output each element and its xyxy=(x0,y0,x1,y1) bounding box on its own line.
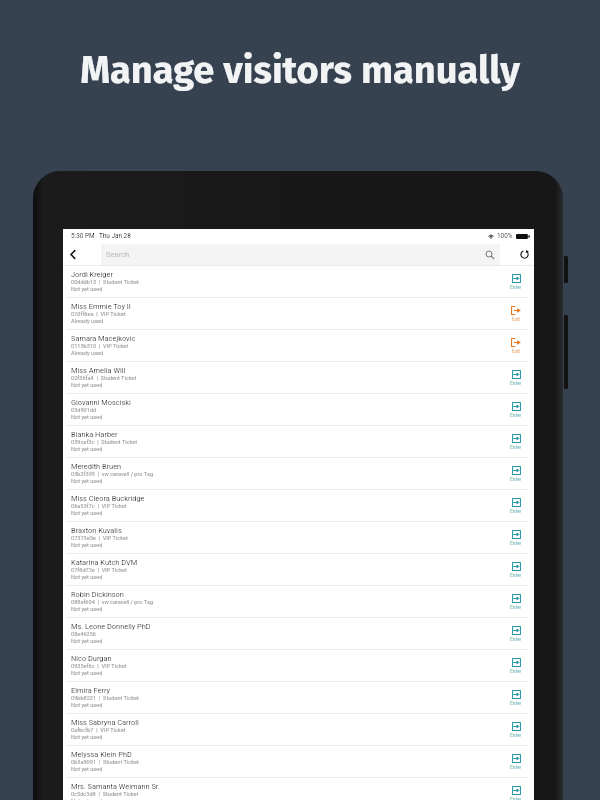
button[interactable]: Search xyxy=(101,244,500,265)
staticText: Enter xyxy=(510,573,522,579)
button[interactable]: Robin Dickinson xyxy=(63,586,534,617)
staticText: Not yet used xyxy=(71,286,103,293)
staticText: Enter xyxy=(510,285,522,291)
staticText: Enter xyxy=(510,797,522,800)
button[interactable]: Exit xyxy=(498,298,534,329)
button[interactable]: Mrs. Samanta Weimann Sr. xyxy=(63,778,534,800)
staticText: 08e46256 xyxy=(71,631,96,638)
staticText: Not yet used xyxy=(71,798,103,800)
staticText: Not yet used xyxy=(71,670,103,677)
staticText: 010ff6ea | VIP Ticket xyxy=(71,311,126,318)
staticText: Ms. Leone Donnelly PhD xyxy=(71,622,151,631)
button[interactable]: Enter xyxy=(498,490,534,521)
staticText: Enter xyxy=(510,541,522,547)
staticText: Jordi Kreiger xyxy=(71,270,113,279)
staticText: 07f8d72e | VIP Ticket xyxy=(71,567,127,574)
button[interactable]: Enter xyxy=(498,426,534,457)
staticText: 06a53f7c | VIP Ticket xyxy=(71,503,127,510)
button[interactable]: Ms. Leone Donnelly PhD xyxy=(63,618,534,649)
button[interactable]: Enter xyxy=(498,746,534,777)
button[interactable]: Exit xyxy=(498,330,534,361)
staticText: Enter xyxy=(510,381,522,387)
button[interactable]: Giovanni Mosciski xyxy=(63,394,534,425)
button[interactable]: Enter xyxy=(498,778,534,800)
staticText: Not yet used xyxy=(71,574,103,581)
button[interactable]: Enter xyxy=(498,522,534,553)
staticText: Not yet used xyxy=(71,542,103,549)
staticText: 100% xyxy=(497,232,513,240)
staticText: Robin Dickinson xyxy=(71,590,124,599)
staticText: 00dddb13 | Student Ticket xyxy=(71,279,139,286)
staticText: Enter xyxy=(510,509,522,515)
button[interactable]: Katarina Kutch DVM xyxy=(63,554,534,585)
staticText: Enter xyxy=(510,765,522,771)
staticText: Enter xyxy=(510,701,522,707)
staticText: 0935ef6c | VIP Ticket xyxy=(71,663,127,670)
staticText: Meredith Bruen xyxy=(71,462,122,471)
staticText: Not yet used xyxy=(71,478,103,485)
staticText: 0afbcfb7 | VIP Ticket xyxy=(71,727,126,734)
staticText: 059caf3c | Student Ticket xyxy=(71,439,138,446)
staticText: 0115b310 | VIP Ticket xyxy=(71,343,129,350)
button[interactable]: Samara Macejkovic xyxy=(63,330,534,361)
staticText: Not yet used xyxy=(71,446,103,453)
staticText: Braxton Kuvalis xyxy=(71,526,122,535)
staticText: Mrs. Samanta Weimann Sr. xyxy=(71,782,160,791)
staticText: Manage visitors manually xyxy=(0,47,600,93)
button[interactable]: Refresh xyxy=(514,243,534,266)
staticText: 03d901dd xyxy=(71,407,97,414)
staticText: Search xyxy=(106,250,130,259)
button[interactable]: Jordi Kreiger xyxy=(63,266,534,297)
button[interactable]: Back xyxy=(63,243,82,266)
staticText: Not yet used xyxy=(71,606,103,613)
staticText: Not yet used xyxy=(71,510,103,517)
button[interactable]: Enter xyxy=(498,586,534,617)
staticText: 07373e5e | VIP Ticket xyxy=(71,535,128,542)
staticText: Already used xyxy=(71,318,104,325)
button[interactable]: Nico Durgan xyxy=(63,650,534,681)
staticText: Miss Sabryna Carroll xyxy=(71,718,139,727)
staticText: Enter xyxy=(510,637,522,643)
button[interactable]: Enter xyxy=(498,714,534,745)
staticText: Already used xyxy=(71,350,104,357)
staticText: Samara Macejkovic xyxy=(71,334,136,343)
button[interactable]: Miss Cleora Buckridge xyxy=(63,490,534,521)
staticText: 088ef604 | vw caravell / pro Tag xyxy=(71,599,153,606)
button[interactable]: Enter xyxy=(498,458,534,489)
button[interactable]: Enter xyxy=(498,362,534,393)
button[interactable]: Miss Emmie Toy II xyxy=(63,298,534,329)
staticText: Nico Durgan xyxy=(71,654,112,663)
button[interactable]: Enter xyxy=(498,554,534,585)
button[interactable]: Enter xyxy=(498,682,534,713)
button[interactable]: Miss Amelia Will xyxy=(63,362,534,393)
staticText: Elmira Ferry xyxy=(71,686,110,695)
staticText: 05b2f395 | vw caravell / pro Tag xyxy=(71,471,154,478)
staticText: Enter xyxy=(510,669,522,675)
button[interactable]: Braxton Kuvalis xyxy=(63,522,534,553)
staticText: Melyssa Klein PhD xyxy=(71,750,132,759)
button[interactable]: Enter xyxy=(498,618,534,649)
staticText: Exit xyxy=(512,317,520,323)
staticText: Enter xyxy=(510,605,522,611)
staticText: Not yet used xyxy=(71,702,103,709)
staticText: Miss Emmie Toy II xyxy=(71,302,131,311)
button[interactable]: Meredith Bruen xyxy=(63,458,534,489)
staticText: Miss Cleora Buckridge xyxy=(71,494,145,503)
button[interactable]: Enter xyxy=(498,650,534,681)
staticText: 0c5dc3d9 | Student Ticket xyxy=(71,791,139,798)
staticText: Giovanni Mosciski xyxy=(71,398,131,407)
staticText: Exit xyxy=(512,349,520,355)
button[interactable]: Melyssa Klein PhD xyxy=(63,746,534,777)
button[interactable]: Bianka Harber xyxy=(63,426,534,457)
staticText: Enter xyxy=(510,445,522,451)
staticText: Enter xyxy=(510,477,522,483)
button[interactable]: Elmira Ferry xyxy=(63,682,534,713)
staticText: Enter xyxy=(510,413,522,419)
staticText: Not yet used xyxy=(71,734,103,741)
button[interactable]: Miss Sabryna Carroll xyxy=(63,714,534,745)
button[interactable]: Enter xyxy=(498,394,534,425)
staticText: Not yet used xyxy=(71,382,103,389)
staticText: 0b5a9091 | Student Ticket xyxy=(71,759,139,766)
staticText: 5:30 PM xyxy=(71,232,95,240)
button[interactable]: Enter xyxy=(498,266,534,297)
